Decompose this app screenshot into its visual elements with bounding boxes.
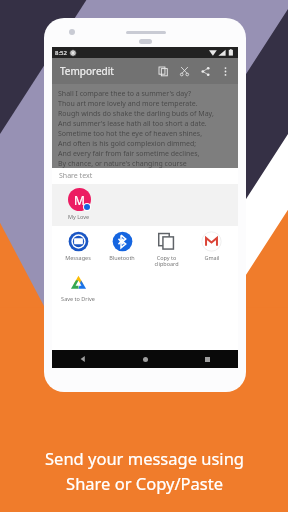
staticText: And every fair from fair sometime declin… xyxy=(58,149,200,159)
staticText: 8:52 xyxy=(55,49,67,57)
staticText: And summer's lease hath all too short a … xyxy=(58,119,207,129)
button[interactable]: Cut xyxy=(177,64,191,78)
staticText: Temporedit xyxy=(60,64,114,78)
button[interactable]: Messages xyxy=(56,231,100,261)
button[interactable]: More options xyxy=(218,64,232,78)
staticText: Save to Drive xyxy=(61,295,95,302)
button[interactable]: M xyxy=(60,188,98,220)
staticText: Share or Copy/Paste xyxy=(66,472,223,494)
button[interactable]: Save to Drive xyxy=(56,272,100,302)
staticText: My Love xyxy=(68,213,90,220)
staticText: Gmail xyxy=(204,254,220,261)
staticText: By chance, or nature's changing course xyxy=(58,159,187,168)
staticText: Share text xyxy=(59,171,93,181)
staticText: Sometime too hot the eye of heaven shine… xyxy=(58,129,203,139)
button[interactable]: Share xyxy=(198,64,212,78)
button[interactable]: Gmail xyxy=(189,231,234,261)
staticText: Shall I compare thee to a summer's day? xyxy=(58,89,191,99)
button[interactable]: Copy xyxy=(156,64,170,78)
staticText: Send your message using xyxy=(45,447,244,469)
staticText: Rough winds do shake the darling buds of… xyxy=(58,109,214,119)
button[interactable]: Copy to clipboard xyxy=(144,231,189,268)
button[interactable]: Back xyxy=(52,350,114,368)
staticText: Messages xyxy=(65,254,91,261)
staticText: Thou art more lovely and more temperate. xyxy=(58,99,198,109)
button[interactable]: Recents xyxy=(176,350,238,368)
staticText: Bluetooth xyxy=(109,254,135,261)
staticText: Copy to clipboard xyxy=(154,254,179,268)
staticText: And often is his gold complexion dimmed; xyxy=(58,139,197,149)
staticText: M xyxy=(74,192,85,208)
button[interactable]: Home xyxy=(114,350,176,368)
button[interactable]: Bluetooth xyxy=(100,231,144,261)
